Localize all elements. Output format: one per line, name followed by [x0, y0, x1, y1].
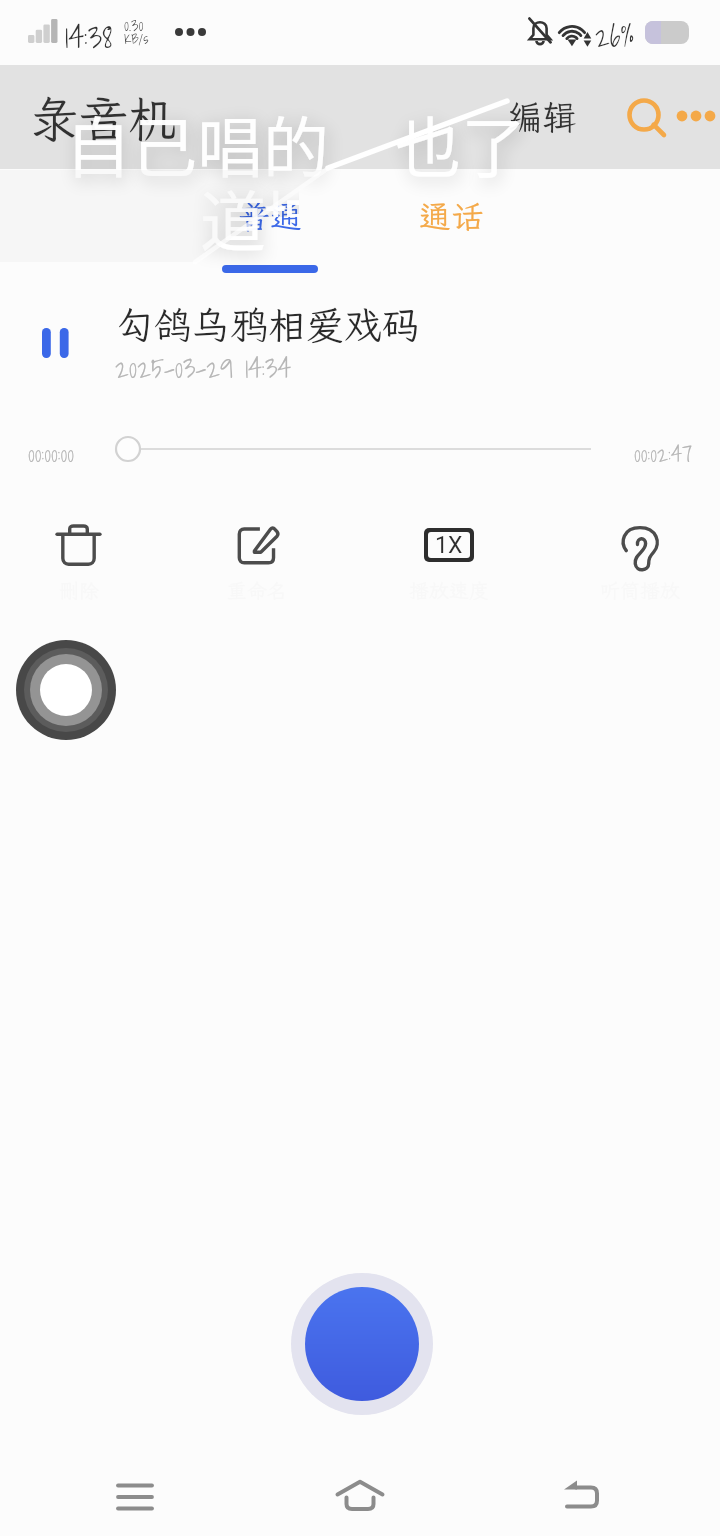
- button[interactable]: Home: [300, 1458, 420, 1536]
- button[interactable]: Rename: [194, 495, 319, 595]
- staticText: 00:02:47: [634, 436, 693, 471]
- staticText: KB/s: [124, 28, 149, 50]
- staticText: 也了: [395, 95, 527, 191]
- staticText: 26%: [595, 13, 634, 60]
- button[interactable]: Earpiece: [577, 495, 702, 595]
- staticText: 普通: [238, 195, 303, 237]
- staticText: 14:38: [65, 12, 113, 62]
- staticText: 自己唱的: [65, 95, 329, 191]
- staticText: 城: [263, 169, 299, 217]
- staticText: 录音机: [30, 86, 178, 151]
- other: Recording indicator: [16, 640, 116, 740]
- staticText: 编辑: [507, 94, 578, 140]
- staticText: 00:00:00: [28, 436, 75, 471]
- staticText: 1X: [435, 532, 463, 558]
- button[interactable]: More options: [670, 96, 716, 136]
- button[interactable]: Recent apps: [78, 1458, 198, 1536]
- button[interactable]: Pause: [0, 292, 720, 392]
- button[interactable]: 编辑: [501, 88, 584, 146]
- staticText: 道: [200, 169, 266, 265]
- staticText: 通话: [419, 195, 484, 237]
- button[interactable]: Playback speed: [386, 495, 511, 595]
- staticText: 0.30: [124, 12, 144, 38]
- button[interactable]: 普通: [190, 186, 350, 246]
- button[interactable]: Back: [524, 1458, 644, 1536]
- button[interactable]: 通话: [371, 186, 531, 246]
- button[interactable]: Record: [291, 1273, 433, 1415]
- other: Pause: [42, 328, 69, 358]
- staticText: 勾鸽乌鸦相爱戏码: [116, 300, 421, 350]
- staticText: 2025-03-29 14:34: [115, 346, 292, 389]
- button[interactable]: Search: [620, 91, 668, 139]
- button[interactable]: Delete: [16, 495, 141, 595]
